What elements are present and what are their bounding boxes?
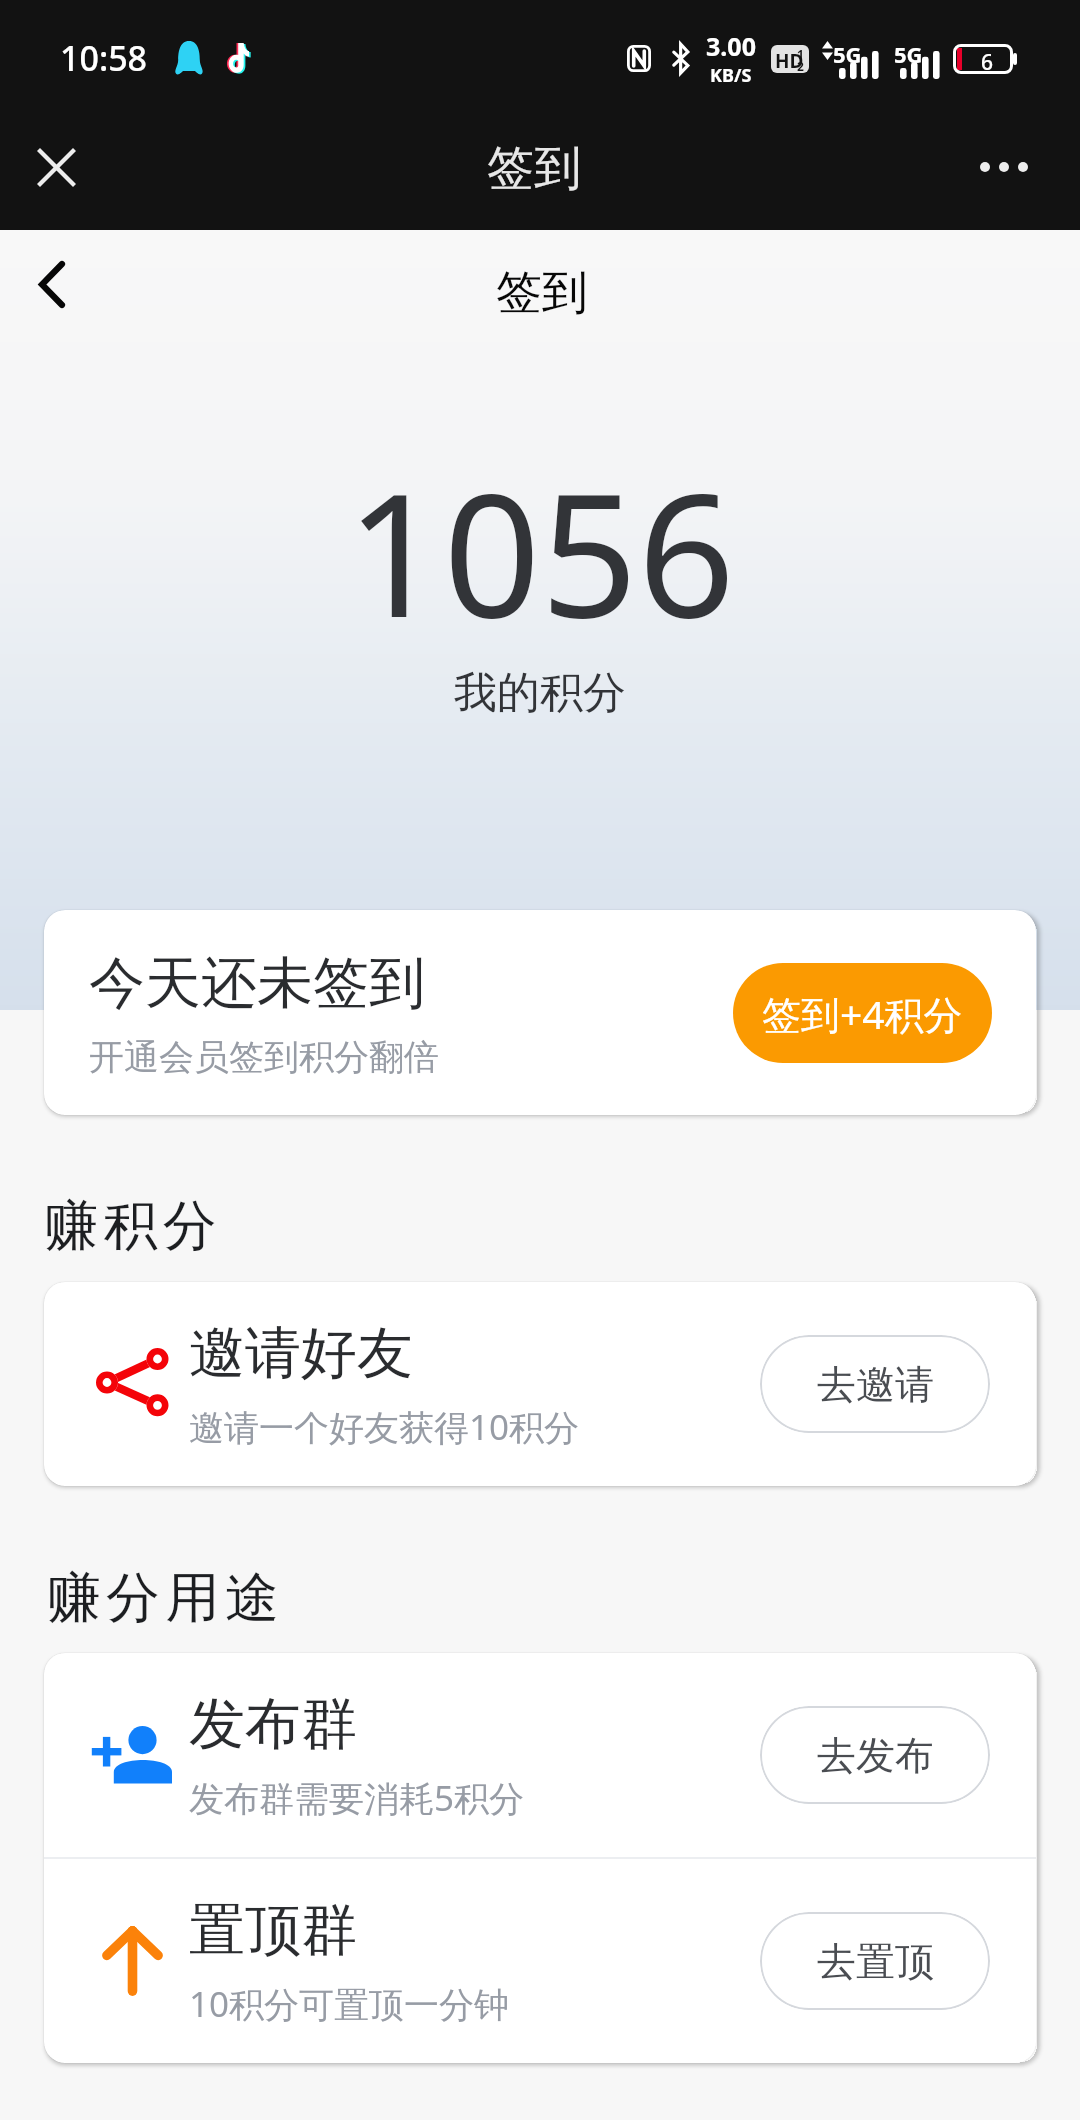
- staticText: 发布群需要消耗5积分: [189, 1774, 525, 1822]
- button[interactable]: 今天还未签到: [44, 910, 1036, 1115]
- staticText: 2: [797, 58, 804, 73]
- staticText: 去置顶: [817, 1937, 934, 1986]
- staticText: 签到+4积分: [762, 987, 963, 1040]
- staticText: 10:58: [60, 35, 148, 81]
- staticText: 去发布: [817, 1731, 934, 1780]
- staticText: 我的积分: [454, 666, 626, 720]
- staticText: 今天还未签到: [89, 948, 425, 1019]
- staticText: 发布群: [189, 1689, 357, 1760]
- staticText: 5G: [894, 39, 923, 69]
- staticText: 6: [981, 48, 994, 70]
- staticText: 5G: [833, 39, 862, 69]
- staticText: 去邀请: [817, 1360, 934, 1409]
- staticText: 3.00: [706, 29, 756, 63]
- staticText: 签到: [487, 139, 581, 198]
- staticText: 10积分可置顶一分钟: [189, 1980, 510, 2028]
- button[interactable]: 邀请好友: [44, 1282, 1036, 1486]
- staticText: 1056: [346, 435, 735, 667]
- staticText: KB/S: [710, 63, 752, 88]
- staticText: 赚分用途: [44, 1564, 282, 1632]
- staticText: 开通会员签到积分翻倍: [89, 1035, 439, 1079]
- button[interactable]: More options: [954, 117, 1054, 217]
- button[interactable]: Close: [4, 122, 106, 224]
- button[interactable]: 发布群: [44, 1653, 1036, 1857]
- button[interactable]: 去邀请: [760, 1335, 990, 1433]
- staticText: 签到: [496, 264, 588, 322]
- button[interactable]: 去发布: [760, 1706, 990, 1804]
- staticText: 邀请好友: [189, 1318, 413, 1389]
- staticText: HD: [775, 48, 804, 73]
- button[interactable]: 去置顶: [760, 1912, 990, 2010]
- button[interactable]: 签到+4积分: [733, 963, 992, 1063]
- staticText: 1: [797, 46, 804, 62]
- button[interactable]: Back: [0, 235, 100, 335]
- button[interactable]: 置顶群: [44, 1859, 1036, 2063]
- staticText: 置顶群: [189, 1895, 357, 1966]
- staticText: 邀请一个好友获得10积分: [189, 1403, 580, 1451]
- staticText: 赚积分: [44, 1192, 223, 1260]
